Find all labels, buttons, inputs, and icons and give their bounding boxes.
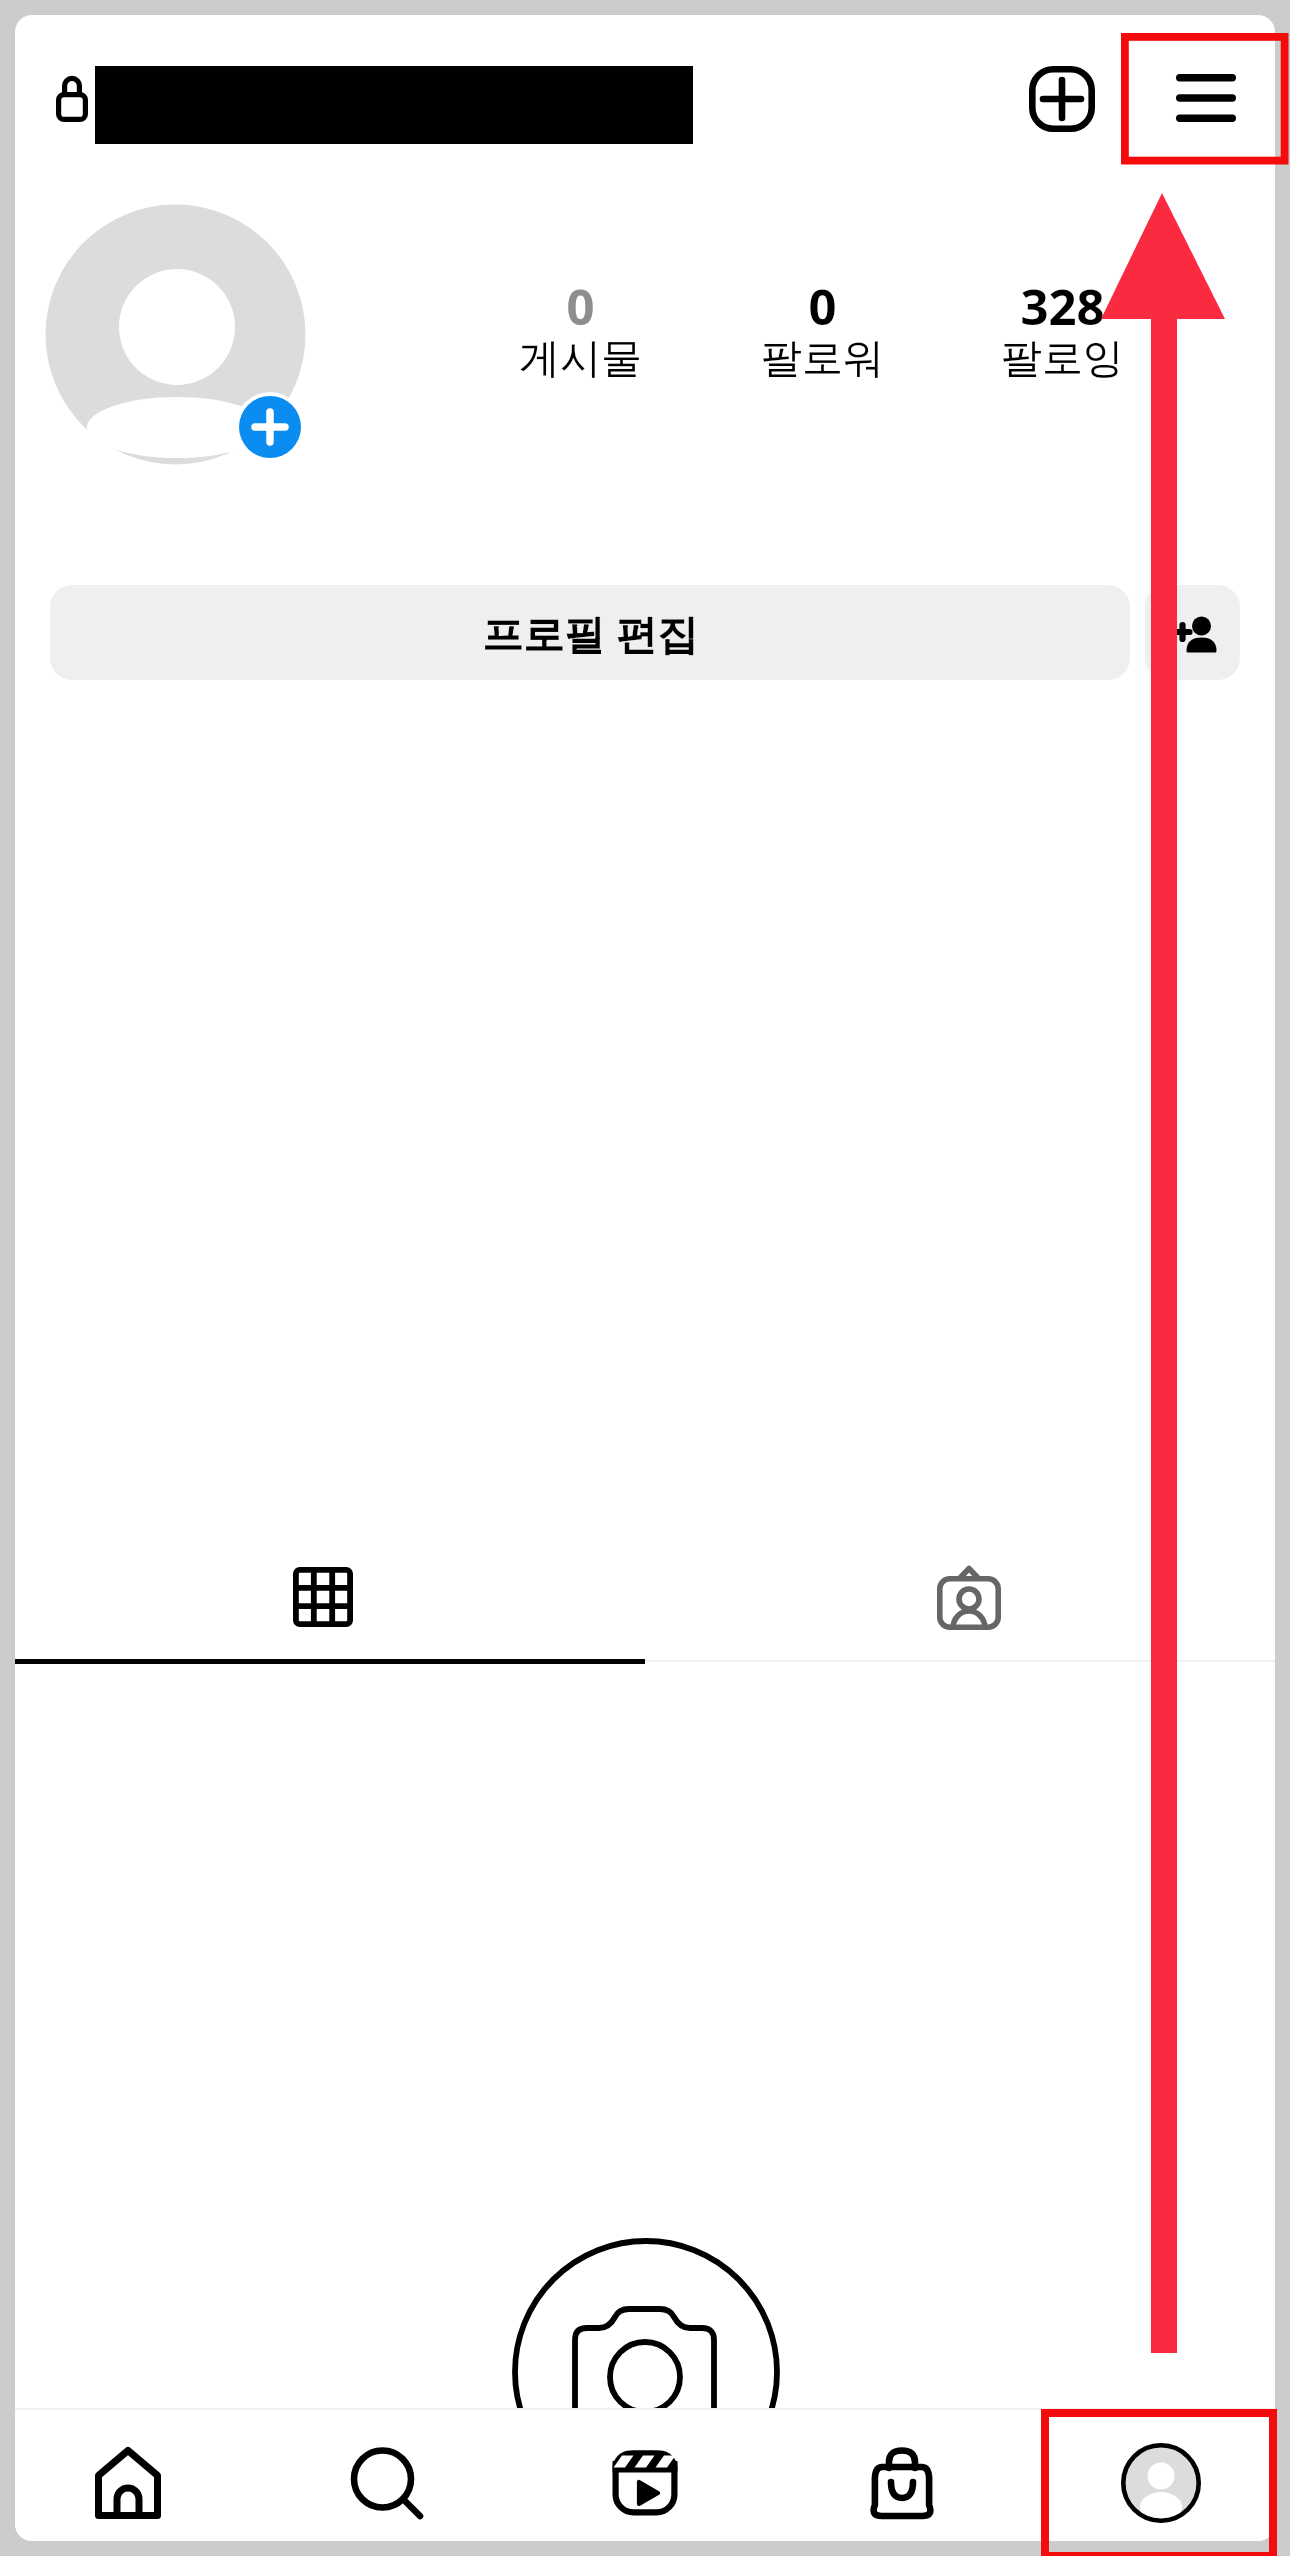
button[interactable]: Shop — [776, 2408, 1028, 2541]
button[interactable]: Tagged posts — [645, 1527, 1275, 1668]
staticText: 328 — [1020, 273, 1105, 340]
button[interactable]: 0 — [470, 273, 690, 398]
button[interactable]: 프로필 편집 — [50, 585, 1130, 680]
staticText: 팔로잉 — [1001, 333, 1124, 385]
button[interactable]: Discover people — [1145, 585, 1240, 680]
staticText: 0 — [808, 273, 837, 340]
staticText: 0 — [566, 273, 595, 340]
button[interactable]: 0 — [712, 273, 932, 398]
button[interactable]: Posts grid — [15, 1527, 645, 1668]
button[interactable]: Reels — [519, 2408, 771, 2541]
button[interactable]: 328 — [952, 273, 1172, 398]
button[interactable]: Home — [15, 2408, 254, 2541]
button[interactable]: Search — [261, 2408, 513, 2541]
button[interactable]: Menu — [1150, 42, 1262, 154]
staticText: 팔로워 — [761, 333, 884, 385]
button[interactable]: New post — [999, 36, 1125, 162]
button[interactable]: Profile photo — [45, 206, 335, 496]
button[interactable] — [40, 55, 720, 175]
staticText: 게시물 — [519, 333, 642, 385]
staticText: 프로필 편집 — [482, 605, 698, 661]
button[interactable]: Profile — [1035, 2408, 1275, 2541]
